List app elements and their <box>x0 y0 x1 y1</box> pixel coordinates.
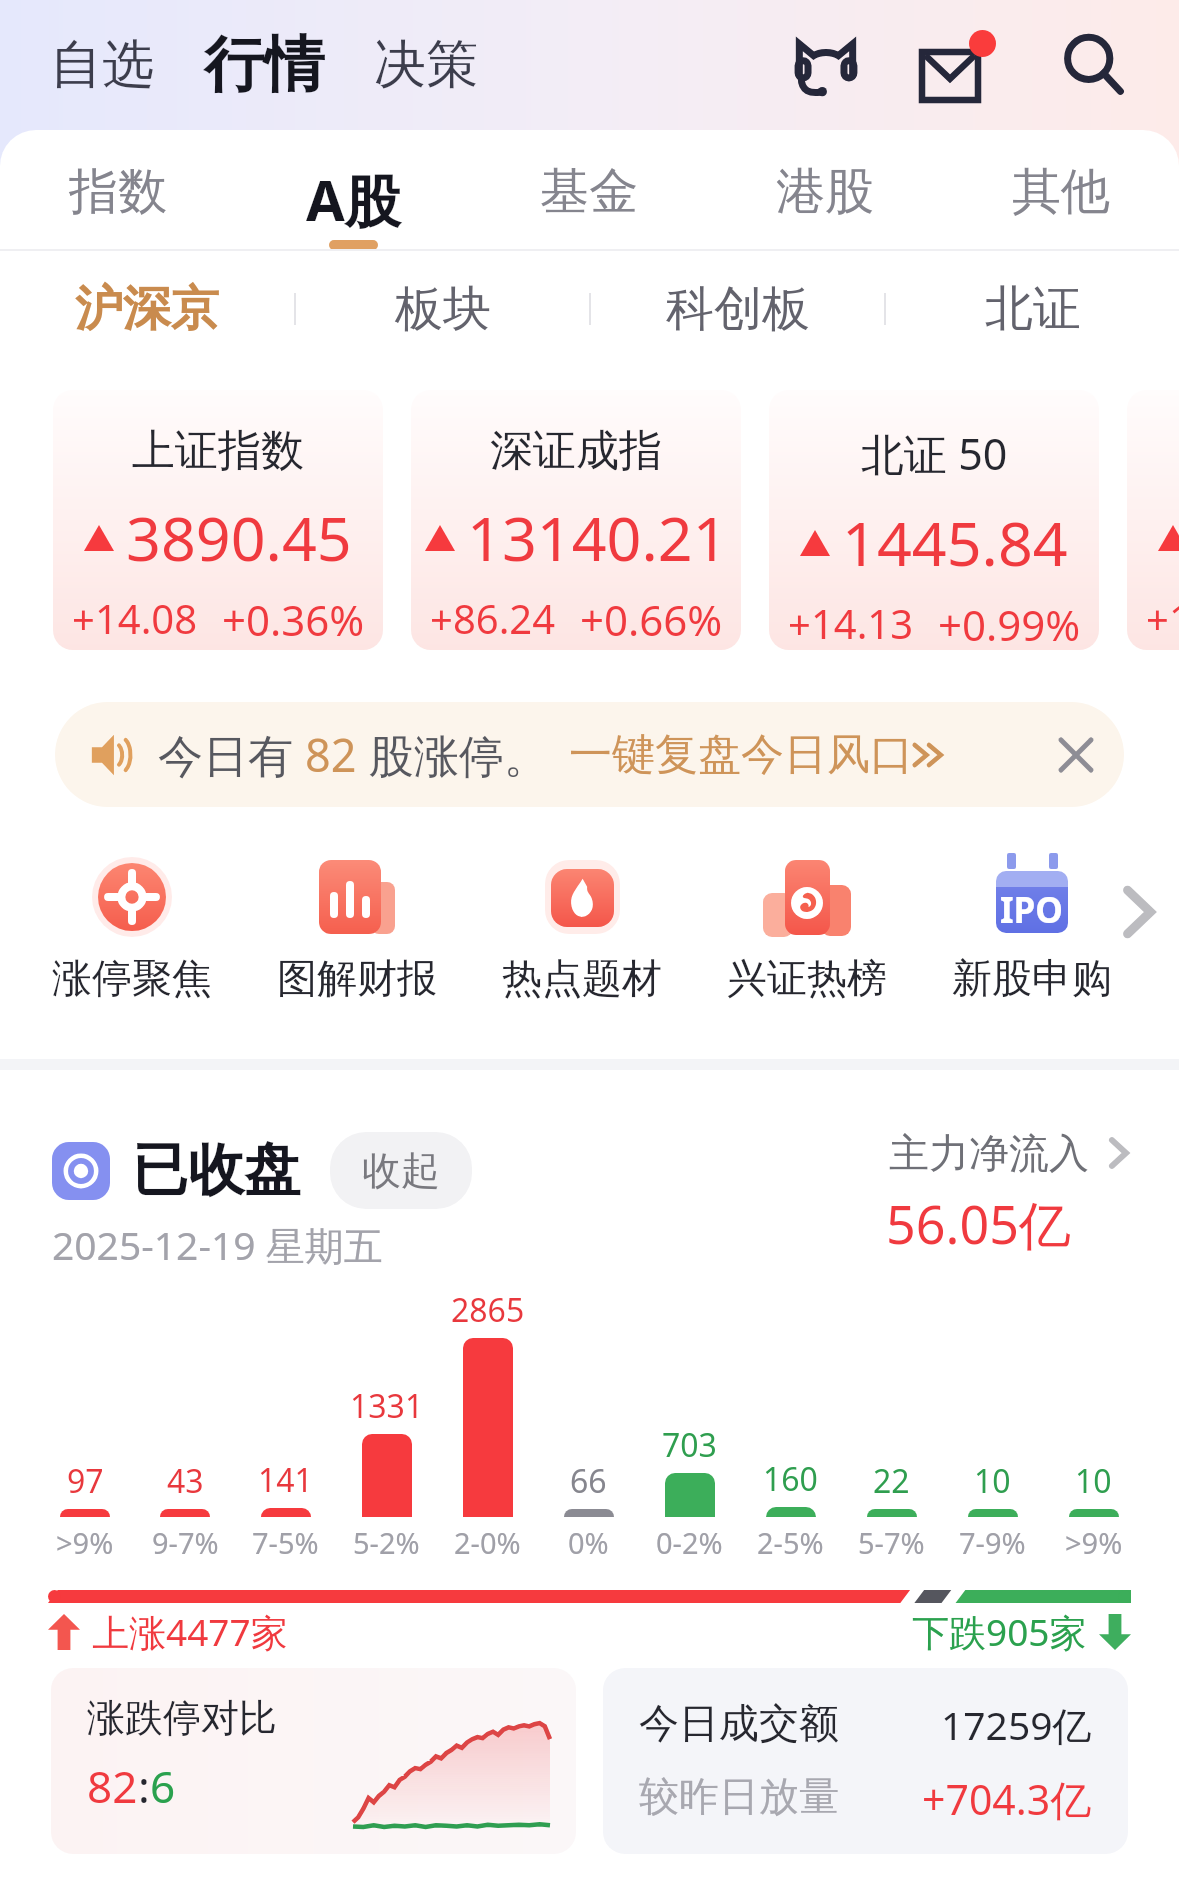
staticText: 703 <box>662 1423 717 1467</box>
staticText: 17259亿 <box>941 1698 1092 1751</box>
button[interactable]: 北证 50 <box>769 390 1099 650</box>
staticText: 新股申购 <box>952 953 1112 1003</box>
staticText: 2025-12-19 星期五 <box>52 1218 383 1271</box>
staticText: +0.99% <box>938 596 1081 650</box>
button[interactable]: 热点题材 <box>492 847 672 1003</box>
button[interactable]: 基金 <box>471 130 707 251</box>
staticText: +86.24 <box>430 591 556 645</box>
staticText: 深证成指 <box>490 424 662 478</box>
staticText: 9-7% <box>152 1523 219 1562</box>
staticText: 科创板 <box>666 279 810 339</box>
staticText: 涨跌停对比 <box>87 1694 277 1742</box>
staticText: 43 <box>167 1459 204 1503</box>
staticText: 下跌905家 <box>912 1606 1087 1657</box>
staticText: +14.08 <box>72 591 198 645</box>
staticText: 141 <box>258 1458 313 1502</box>
staticText: 82 <box>305 724 357 785</box>
staticText: 今日有 <box>158 724 305 785</box>
staticText: 板块 <box>395 279 491 339</box>
staticText: 0-2% <box>656 1523 723 1562</box>
button[interactable]: 涨停聚焦 <box>42 847 222 1003</box>
button[interactable]: 主力净流入 <box>886 1128 1129 1259</box>
staticText: 56.05亿 <box>886 1188 1071 1259</box>
staticText: 北证 <box>985 279 1081 339</box>
staticText: 6 <box>150 1756 176 1816</box>
button[interactable]: Customer service <box>781 20 871 110</box>
button[interactable]: 行情 <box>200 17 328 113</box>
staticText: 今日成交额 <box>639 1698 839 1748</box>
button[interactable]: Messages <box>915 20 1005 110</box>
staticText: +704.3亿 <box>922 1771 1092 1827</box>
staticText: 13140.21 <box>467 496 728 579</box>
staticText: 1331 <box>350 1384 424 1428</box>
staticText: 1445.84 <box>842 501 1068 584</box>
button[interactable]: 其他 <box>943 130 1179 251</box>
staticText: : <box>138 1756 150 1816</box>
staticText: 港股 <box>776 161 874 223</box>
staticText: 主力净流入 <box>889 1128 1089 1178</box>
staticText: IPO <box>1000 886 1064 934</box>
button[interactable]: A股 <box>235 130 471 251</box>
staticText: 涨停聚焦 <box>52 953 212 1003</box>
staticText: 10 <box>1075 1459 1112 1503</box>
button[interactable]: Search <box>1049 20 1139 110</box>
staticText: +16.20 <box>1146 591 1179 645</box>
staticText: 决策 <box>374 32 478 98</box>
staticText: 3890.45 <box>126 496 352 579</box>
button[interactable]: 收起 <box>330 1132 472 1209</box>
staticText: 5-7% <box>858 1523 925 1562</box>
button[interactable]: 今日成交额 <box>603 1668 1128 1854</box>
staticText: 2-5% <box>757 1523 824 1562</box>
staticText: 22 <box>873 1459 910 1503</box>
button[interactable]: 涨跌停对比 <box>51 1668 576 1854</box>
staticText: +0.36% <box>222 591 365 648</box>
button[interactable]: 兴证热榜 <box>717 847 897 1003</box>
button[interactable]: 上证指数 <box>53 390 383 650</box>
staticText: 基金 <box>540 161 638 223</box>
staticText: 2865 <box>451 1288 525 1332</box>
button[interactable]: 板块 <box>296 251 589 366</box>
staticText: +14.13 <box>788 596 914 650</box>
button[interactable]: Close <box>1045 724 1107 786</box>
staticText: 行情 <box>204 27 324 103</box>
staticText: 自选 <box>50 32 154 98</box>
button[interactable]: 沪深京 <box>0 251 294 366</box>
staticText: 上证指数 <box>132 424 304 478</box>
button[interactable]: 深证成指 <box>411 390 741 650</box>
staticText: 指数 <box>69 161 167 223</box>
button[interactable]: 港股 <box>707 130 943 251</box>
staticText: 10 <box>974 1459 1011 1503</box>
staticText: A股 <box>306 161 401 237</box>
staticText: 一键复盘今日风口 <box>569 728 913 782</box>
staticText: 较昨日放量 <box>639 1771 839 1821</box>
button[interactable]: 图解财报 <box>267 847 447 1003</box>
staticText: 82 <box>87 1756 138 1816</box>
staticText: 股涨停。 <box>357 724 549 785</box>
button[interactable]: 指数 <box>0 130 235 251</box>
staticText: 热点题材 <box>502 953 662 1003</box>
staticText: >9% <box>56 1523 114 1562</box>
button[interactable]: 北证 <box>886 251 1179 366</box>
button[interactable]: 科创板 <box>591 251 884 366</box>
button[interactable]: More <box>1099 867 1179 957</box>
button[interactable]: 今日有 <box>55 702 1124 807</box>
staticText: 收起 <box>362 1146 440 1195</box>
button[interactable]: 创业板指 <box>1127 390 1179 650</box>
staticText: 图解财报 <box>277 953 437 1003</box>
staticText: +0.66% <box>580 591 723 648</box>
button[interactable]: 自选 <box>46 16 158 114</box>
staticText: 北证 50 <box>861 424 1008 483</box>
staticText: 5-2% <box>353 1523 420 1562</box>
staticText: 7-9% <box>959 1523 1026 1562</box>
staticText: 已收盘 <box>132 1135 300 1206</box>
button[interactable]: IPO <box>942 847 1122 1003</box>
staticText: 其他 <box>1012 161 1110 223</box>
staticText: 兴证热榜 <box>727 953 887 1003</box>
staticText: 0% <box>568 1523 609 1562</box>
staticText: 97 <box>67 1459 104 1503</box>
staticText: 66 <box>570 1459 607 1503</box>
staticText: >9% <box>1065 1523 1123 1562</box>
staticText: 160 <box>763 1457 818 1501</box>
button[interactable]: 决策 <box>370 16 482 114</box>
staticText: 沪深京 <box>75 279 219 339</box>
